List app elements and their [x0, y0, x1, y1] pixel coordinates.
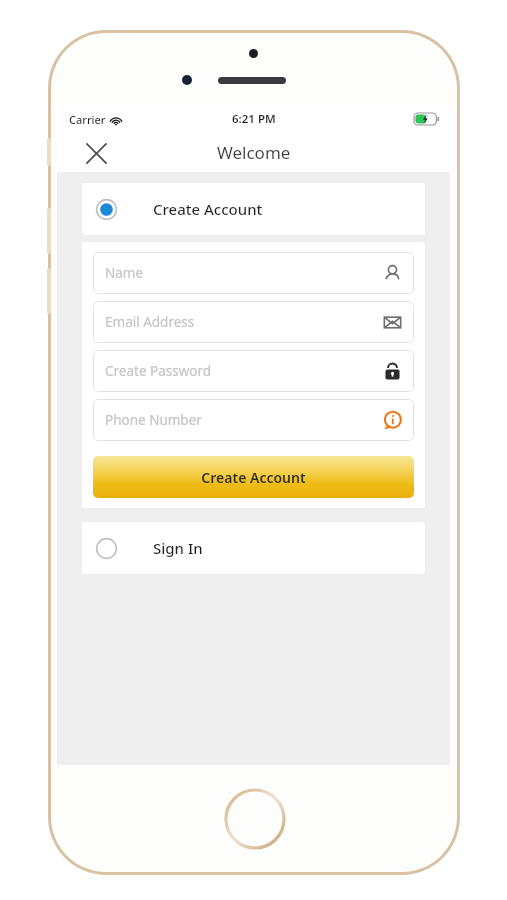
button[interactable]: Create Account — [93, 456, 414, 498]
button[interactable]: Name — [93, 252, 414, 294]
button[interactable]: Create Account — [82, 183, 425, 235]
staticText: Phone Number — [105, 411, 383, 429]
button[interactable]: Create Password — [93, 350, 414, 392]
button[interactable]: Sign In — [82, 522, 425, 574]
staticText: Sign In — [153, 538, 203, 558]
staticText: Carrier — [69, 112, 106, 127]
button[interactable]: Close — [81, 138, 111, 168]
button[interactable]: Phone Number — [93, 399, 414, 441]
staticText: Create Account — [153, 199, 263, 219]
staticText: 6:21 PM — [232, 111, 276, 127]
button[interactable]: Home — [224, 788, 286, 850]
staticText: Welcome — [217, 141, 291, 164]
button[interactable]: Email Address — [93, 301, 414, 343]
staticText: Email Address — [105, 313, 383, 331]
staticText: Create Password — [105, 362, 383, 380]
staticText: Create Account — [201, 468, 306, 487]
staticText: Name — [105, 264, 383, 282]
